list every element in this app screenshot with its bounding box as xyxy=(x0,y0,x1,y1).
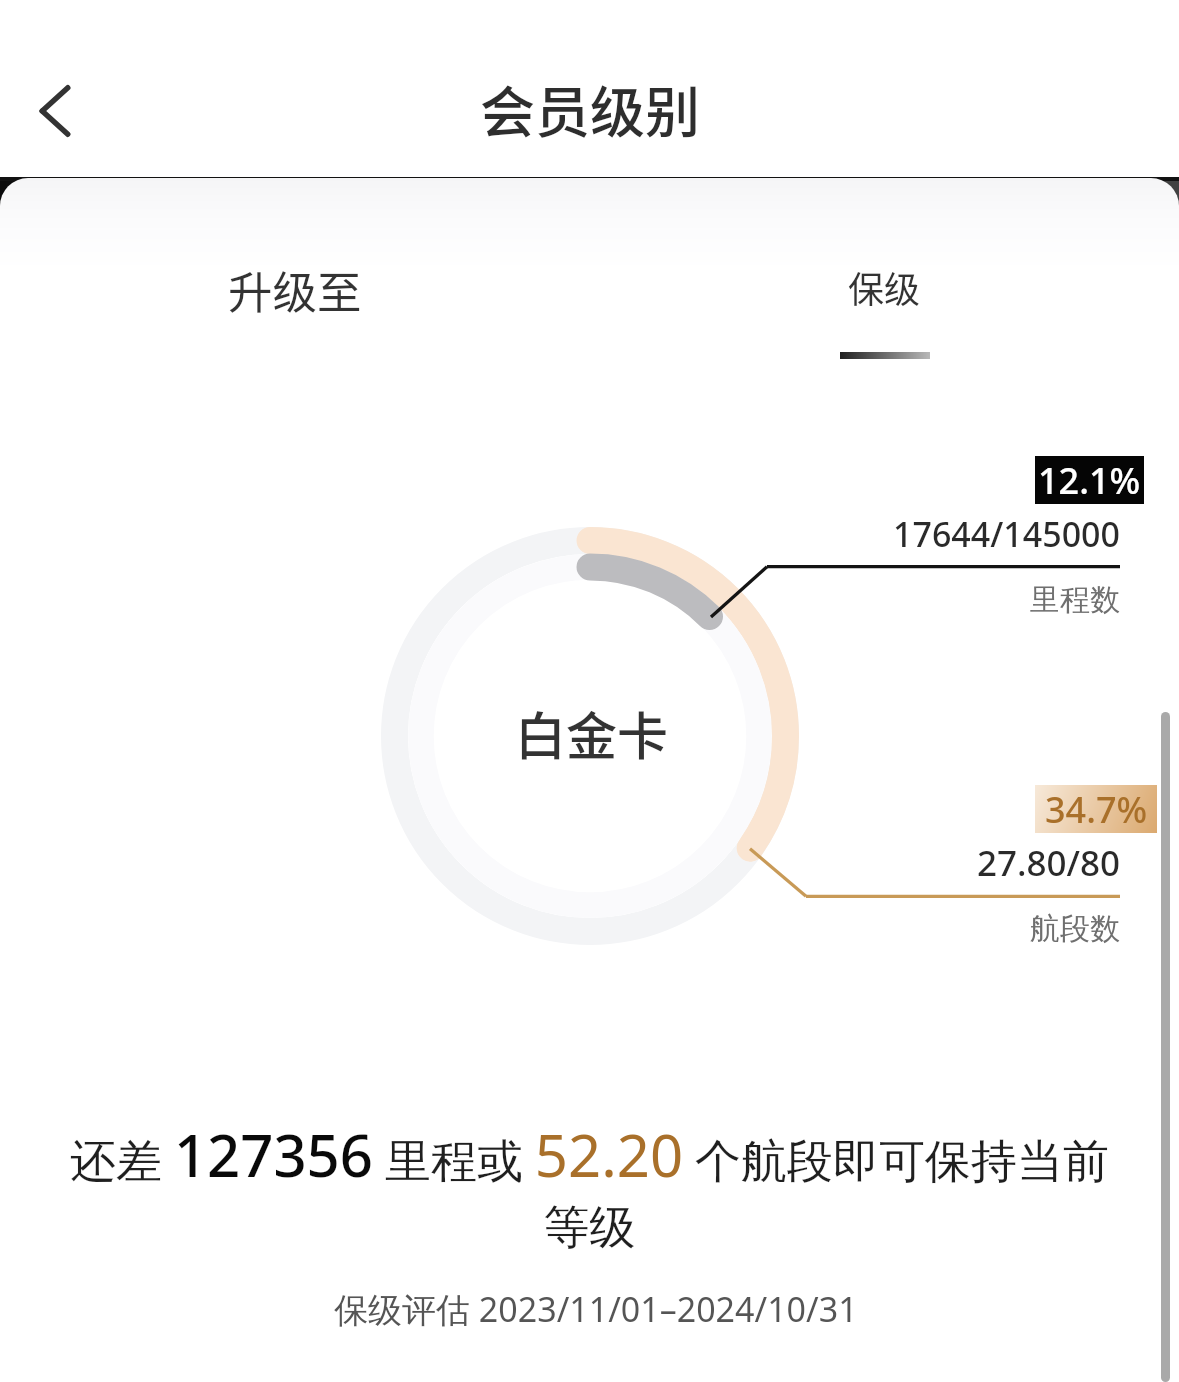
button[interactable]: 保级 xyxy=(812,253,957,359)
staticText: 保级 xyxy=(848,261,921,313)
staticText: 12.1% xyxy=(1038,456,1141,504)
staticText: 17644/145000 xyxy=(0,511,1120,557)
staticText: 34.7% xyxy=(1045,785,1148,833)
staticText: 保级评估 2023/11/01–2024/10/31 xyxy=(334,1286,858,1332)
staticText: 升级至 xyxy=(228,257,362,321)
staticText: 航段数 xyxy=(0,910,1120,948)
button[interactable]: 升级至 xyxy=(228,257,362,321)
staticText: 里程数 xyxy=(0,581,1120,619)
button[interactable]: Back xyxy=(11,67,99,155)
staticText: 白金卡 xyxy=(515,696,669,770)
staticText: 27.80/80 xyxy=(0,839,1120,887)
staticText: 还差 127356 里程或 52.20 个航段即可保持当前等级 xyxy=(64,1115,1115,1257)
staticText: 会员级别 xyxy=(480,68,701,148)
